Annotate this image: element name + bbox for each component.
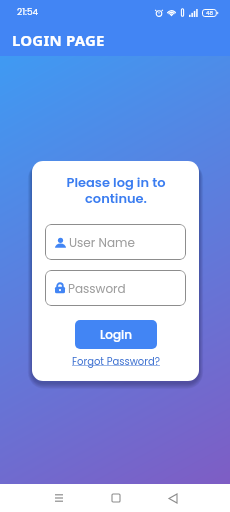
staticText: 21:54 [17, 6, 39, 19]
staticText: Please log in to continue. [56, 173, 176, 208]
staticText: User Name [69, 234, 135, 251]
staticText: 48 [206, 9, 213, 17]
button[interactable]: Recent apps [45, 484, 73, 512]
staticText: Login [100, 326, 133, 343]
staticText: Forgot Password? [72, 354, 160, 368]
staticText: Password [68, 280, 126, 297]
button[interactable]: Password [45, 270, 186, 306]
button[interactable]: Back [159, 484, 187, 512]
staticText: LOGIN PAGE [12, 30, 105, 50]
button[interactable]: Login [75, 320, 157, 349]
button[interactable]: Home [102, 484, 130, 512]
button[interactable]: Forgot Password? [72, 354, 160, 368]
button[interactable]: User Name [45, 224, 186, 260]
button[interactable]: LOGIN PAGE [0, 22, 230, 56]
